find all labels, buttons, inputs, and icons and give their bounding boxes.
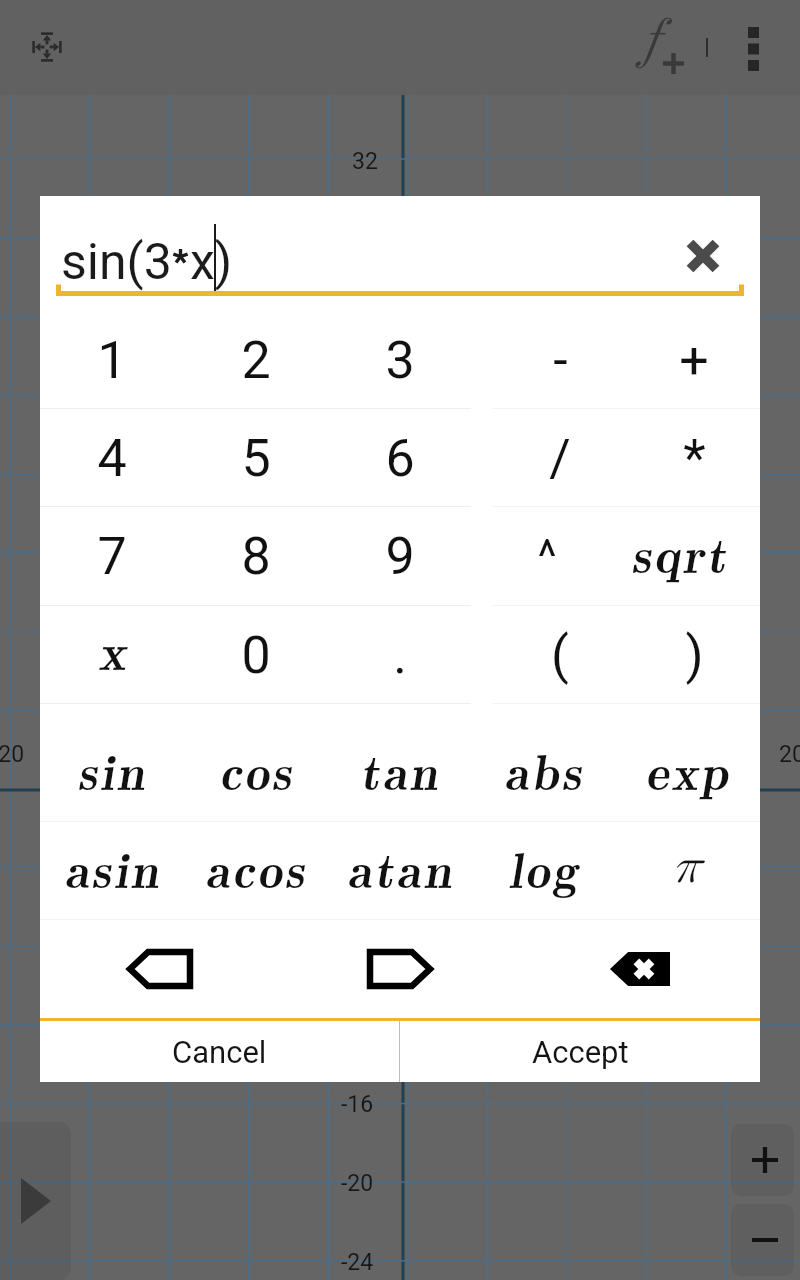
staticText: abs: [504, 733, 584, 805]
staticText: -: [553, 330, 568, 391]
button[interactable]: 8: [184, 507, 328, 606]
staticText: sqrt: [631, 516, 729, 588]
staticText: cos: [219, 733, 294, 805]
staticText: 𝑓: [634, 12, 662, 68]
button[interactable]: 5: [184, 409, 328, 507]
button[interactable]: 2: [184, 311, 328, 409]
button[interactable]: acos: [184, 822, 328, 920]
button[interactable]: x: [40, 606, 184, 704]
button[interactable]: exp: [616, 724, 760, 822]
staticText: sin(3: [61, 233, 172, 292]
staticText: asin: [64, 831, 161, 903]
button[interactable]: /: [493, 409, 627, 507]
button[interactable]: 4: [40, 409, 184, 507]
staticText: 8: [241, 526, 271, 587]
button[interactable]: Move cursor right: [280, 920, 520, 1018]
staticText: 6: [385, 428, 415, 489]
button[interactable]: Clear formula: [673, 226, 733, 286]
staticText: Cancel: [172, 1034, 267, 1070]
staticText: *: [683, 428, 706, 489]
button[interactable]: 1: [40, 311, 184, 409]
button[interactable]: Fit graph to screen: [17, 17, 77, 77]
staticText: /: [549, 428, 571, 489]
button[interactable]: 6: [328, 409, 472, 507]
staticText: -16: [341, 1091, 374, 1118]
button[interactable]: Accept: [400, 1021, 760, 1082]
button[interactable]: Cancel: [40, 1021, 399, 1082]
staticText: exp: [645, 733, 731, 805]
button[interactable]: ^: [493, 507, 627, 606]
button[interactable]: .: [328, 606, 472, 704]
staticText: atan: [347, 831, 454, 903]
staticText: ^: [537, 530, 557, 584]
button[interactable]: Zoom in: [731, 1124, 794, 1196]
button[interactable]: cos: [184, 724, 328, 822]
button[interactable]: Move cursor left: [40, 920, 280, 1018]
button[interactable]: ): [627, 606, 761, 704]
staticText: -24: [341, 1249, 374, 1276]
button[interactable]: atan: [328, 822, 472, 920]
staticText: 5: [241, 428, 271, 489]
button[interactable]: 7: [40, 507, 184, 606]
staticText: 1: [97, 330, 127, 391]
button[interactable]: asin: [40, 822, 184, 920]
staticText: sin: [77, 733, 147, 805]
staticText: Accept: [532, 1034, 629, 1070]
staticText: tan: [360, 733, 440, 805]
button[interactable]: Delete: [520, 920, 760, 1018]
staticText: acos: [205, 831, 307, 903]
button[interactable]: Zoom out: [731, 1204, 794, 1276]
button[interactable]: Add function: [623, 8, 701, 86]
staticText: 0: [241, 625, 271, 686]
button[interactable]: log: [472, 822, 616, 920]
button[interactable]: (: [493, 606, 627, 704]
staticText: -20: [341, 1170, 374, 1197]
button[interactable]: More options: [723, 18, 783, 78]
button[interactable]: Show function list: [0, 1122, 71, 1280]
staticText: 3: [385, 330, 415, 391]
button[interactable]: -: [493, 311, 627, 409]
button[interactable]: sin: [40, 724, 184, 822]
staticText: -20: [0, 741, 25, 768]
staticText: (: [551, 625, 569, 686]
button[interactable]: +: [627, 311, 761, 409]
staticText: log: [508, 831, 580, 903]
button[interactable]: 0: [184, 606, 328, 704]
button[interactable]: *: [627, 409, 761, 507]
button[interactable]: tan: [328, 724, 472, 822]
staticText: x): [190, 233, 233, 292]
staticText: 4: [97, 428, 127, 489]
staticText: 9: [385, 526, 415, 587]
staticText: ): [685, 625, 704, 686]
staticText: 32: [352, 148, 378, 175]
staticText: +: [679, 330, 709, 391]
staticText: .: [393, 625, 407, 686]
button[interactable]: sqrt: [627, 507, 761, 606]
staticText: 2: [241, 330, 271, 391]
staticText: x: [98, 611, 126, 685]
button[interactable]: abs: [472, 724, 616, 822]
button[interactable]: 9: [328, 507, 472, 606]
staticText: 20: [779, 741, 800, 768]
button[interactable]: 3: [328, 311, 472, 409]
button[interactable]: 𝜋: [616, 822, 760, 920]
staticText: 7: [97, 526, 127, 587]
staticText: 𝜋: [672, 842, 704, 892]
